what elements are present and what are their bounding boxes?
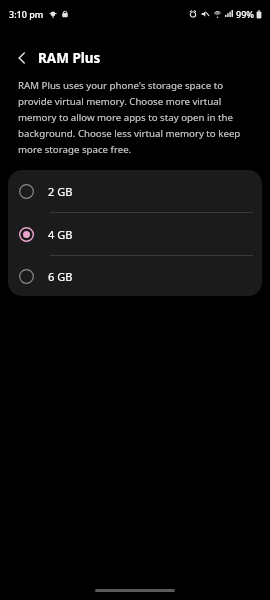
staticText: 6 GB: [48, 269, 73, 284]
staticText: RAM Plus uses your phone's storage space…: [18, 79, 254, 156]
button[interactable]: 2 GB: [8, 170, 262, 212]
button[interactable]: Back: [8, 44, 36, 72]
staticText: RAM Plus: [38, 49, 101, 67]
staticText: 3:10 pm: [9, 8, 44, 20]
button[interactable]: 4 GB: [8, 213, 262, 255]
staticText: 2 GB: [48, 184, 73, 199]
staticText: 99%: [236, 8, 254, 20]
button[interactable]: 6 GB: [8, 256, 262, 296]
staticText: 4 GB: [48, 227, 73, 242]
